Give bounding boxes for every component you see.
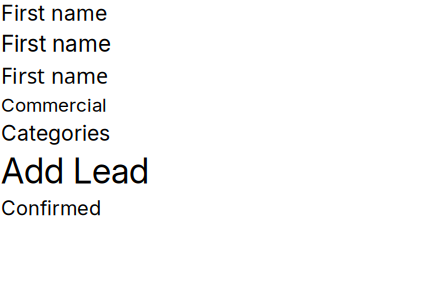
staticText: Confirmed <box>1 196 101 220</box>
staticText: First name <box>1 30 111 57</box>
staticText: First name <box>1 61 108 89</box>
staticText: Categories <box>1 120 110 146</box>
staticText: Commercial <box>1 94 107 116</box>
staticText: First name <box>1 0 107 26</box>
staticText: Add Lead <box>1 150 149 192</box>
